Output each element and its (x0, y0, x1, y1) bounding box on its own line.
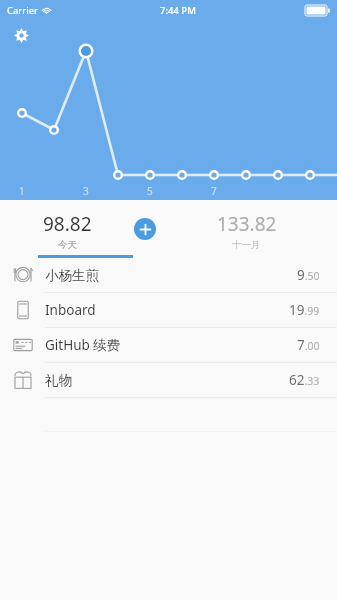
staticText: Inboard (45, 301, 96, 319)
button[interactable]: 小杨生煎 (0, 258, 337, 292)
staticText: 礼物 (45, 372, 72, 389)
staticText: 小杨生煎 (45, 267, 99, 284)
staticText: 9.50 (297, 266, 320, 284)
staticText: 7:44 PM (160, 4, 196, 17)
staticText: 今天 (58, 239, 77, 251)
button[interactable]: Inboard (0, 293, 337, 327)
staticText: Carrier (7, 4, 38, 17)
staticText: 十一月 (232, 239, 261, 251)
staticText: GitHub 续费 (45, 336, 121, 354)
staticText: 62.33 (289, 371, 320, 389)
staticText: 98.82 (43, 211, 92, 237)
button[interactable]: 礼物 (0, 363, 337, 397)
button[interactable]: 133.82 (156, 200, 337, 258)
staticText: 7.00 (297, 336, 320, 354)
staticText: 1 (19, 184, 25, 198)
staticText: 7 (211, 184, 217, 198)
button[interactable]: 98.82 (0, 200, 134, 258)
staticText: 133.82 (217, 211, 277, 237)
staticText: 5 (147, 184, 153, 198)
button[interactable]: GitHub 续费 (0, 328, 337, 362)
staticText: 3 (83, 184, 89, 198)
staticText: 19.99 (289, 301, 320, 319)
button[interactable]: Add expense (134, 218, 156, 240)
button[interactable]: Settings (9, 23, 33, 47)
